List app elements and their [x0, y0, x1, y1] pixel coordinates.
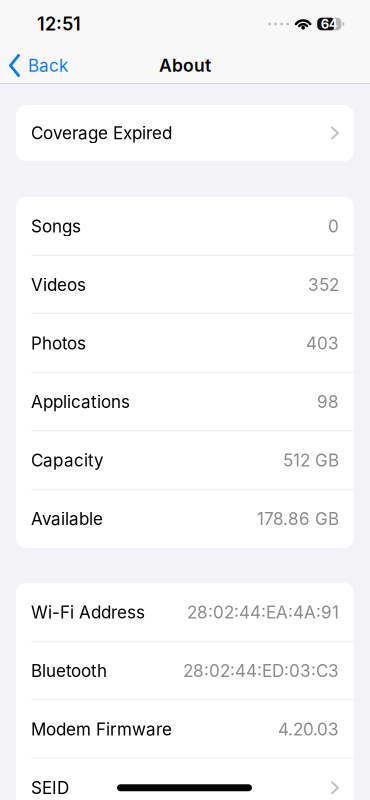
staticText: Bluetooth	[31, 660, 107, 681]
button[interactable]: Back	[0, 54, 68, 77]
staticText: 98	[317, 391, 339, 412]
button[interactable]: Modem Firmware	[16, 700, 354, 758]
button[interactable]: Bluetooth	[16, 641, 354, 700]
staticText: 512 GB	[283, 450, 339, 471]
staticText: 352	[308, 274, 339, 295]
staticText: Available	[31, 508, 103, 529]
staticText: Photos	[31, 333, 86, 354]
button[interactable]: SEID	[16, 758, 354, 800]
button[interactable]: Wi-Fi Address	[16, 583, 354, 641]
staticText: 64	[321, 16, 338, 32]
staticText: 4.20.03	[278, 719, 339, 740]
button[interactable]: Coverage Expired	[16, 105, 354, 161]
staticText: SEID	[31, 777, 69, 798]
button[interactable]: Songs	[16, 197, 354, 255]
staticText: Wi-Fi Address	[31, 602, 145, 623]
staticText: Back	[28, 55, 68, 76]
staticText: 28:02:44:ED:03:C3	[183, 660, 339, 681]
button[interactable]: Photos	[16, 314, 354, 372]
staticText: Coverage Expired	[31, 123, 172, 143]
button[interactable]: Applications	[16, 372, 354, 431]
staticText: Videos	[31, 274, 86, 295]
staticText: Songs	[31, 216, 81, 237]
button[interactable]: Videos	[16, 255, 354, 314]
staticText: Applications	[31, 391, 130, 412]
staticText: 12:51	[37, 13, 81, 35]
staticText: About	[159, 55, 211, 76]
staticText: 0	[328, 216, 339, 237]
staticText: 28:02:44:EA:4A:91	[187, 602, 339, 623]
staticText: Modem Firmware	[31, 719, 172, 740]
staticText: 403	[306, 333, 339, 354]
staticText: Capacity	[31, 450, 104, 471]
button[interactable]: Available	[16, 489, 354, 548]
staticText: 178.86 GB	[257, 508, 339, 529]
button[interactable]: Capacity	[16, 431, 354, 489]
